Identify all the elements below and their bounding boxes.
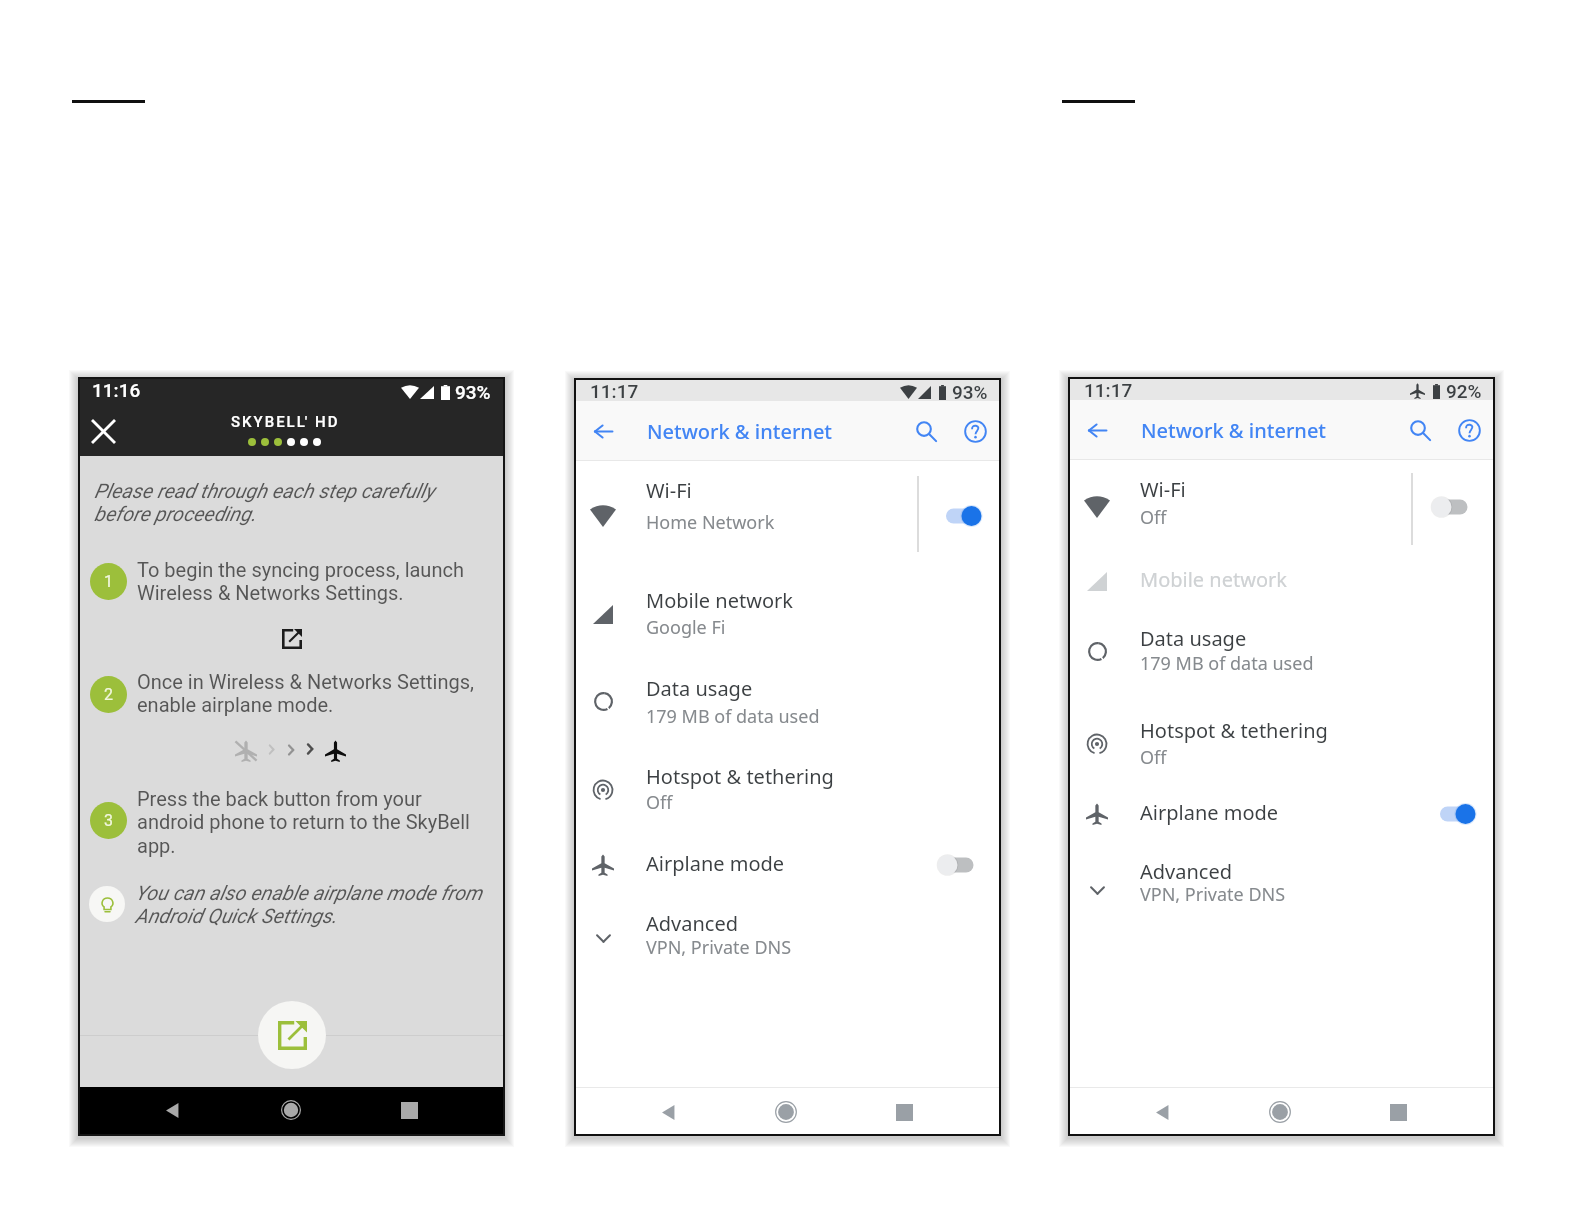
button[interactable]: Toggle bbox=[1418, 484, 1484, 530]
staticText: 1 bbox=[104, 572, 113, 591]
staticText: 179 MB of data used bbox=[1140, 651, 1314, 676]
staticText: Mobile network bbox=[1140, 566, 1287, 593]
staticText: Data usage bbox=[1140, 625, 1247, 652]
button[interactable]: Open in new bbox=[276, 623, 307, 654]
button[interactable]: Toggle bbox=[1418, 791, 1484, 837]
staticText: Please read through each step carefully … bbox=[94, 479, 454, 525]
staticText: Mobile network bbox=[646, 587, 793, 614]
button[interactable] bbox=[1068, 792, 1495, 832]
button[interactable]: 1 bbox=[90, 563, 127, 600]
button[interactable]: Search bbox=[904, 409, 948, 453]
staticText: Wi-Fi bbox=[646, 477, 692, 504]
button[interactable]: 3 bbox=[90, 802, 127, 839]
button[interactable] bbox=[1068, 618, 1495, 674]
button[interactable]: Home bbox=[272, 1091, 310, 1129]
button[interactable] bbox=[574, 580, 1001, 636]
button[interactable]: Press the back button from your android … bbox=[137, 787, 482, 857]
staticText: VPN, Private DNS bbox=[646, 935, 792, 960]
button[interactable]: Once in Wireless & Networks Settings, en… bbox=[137, 670, 482, 716]
staticText: Airplane mode bbox=[1140, 799, 1279, 826]
button[interactable]: Back bbox=[153, 1091, 191, 1129]
staticText: Hotspot & tethering bbox=[646, 763, 834, 790]
staticText: Home Network bbox=[646, 510, 775, 535]
staticText: Data usage bbox=[646, 675, 753, 702]
staticText: Advanced bbox=[1140, 858, 1232, 885]
staticText: Off bbox=[1140, 505, 1167, 530]
button[interactable]: Help bbox=[1447, 408, 1491, 452]
button[interactable] bbox=[1068, 469, 1495, 525]
staticText: Network & internet bbox=[647, 418, 833, 445]
button[interactable]: Launch Wireless and Networks settings bbox=[258, 1001, 326, 1069]
button[interactable]: Recent apps bbox=[1379, 1093, 1417, 1131]
staticText: Google Fi bbox=[646, 615, 726, 640]
button[interactable]: Close bbox=[81, 409, 125, 453]
button[interactable]: Navigate up bbox=[581, 409, 625, 453]
button[interactable]: Home bbox=[1261, 1093, 1299, 1131]
staticText: Off bbox=[646, 790, 673, 815]
staticText: Advanced bbox=[646, 910, 738, 937]
button[interactable] bbox=[574, 668, 1001, 724]
staticText: Hotspot & tethering bbox=[1140, 717, 1328, 744]
staticText: 179 MB of data used bbox=[646, 704, 820, 729]
staticText: 93% bbox=[455, 381, 491, 403]
staticText: 92% bbox=[1446, 380, 1482, 402]
button[interactable] bbox=[574, 470, 1001, 526]
staticText: VPN, Private DNS bbox=[1140, 882, 1286, 907]
staticText: Off bbox=[1140, 745, 1167, 770]
staticText: 11:17 bbox=[1084, 379, 1133, 401]
staticText: 93% bbox=[952, 381, 988, 403]
staticText: Wi-Fi bbox=[1140, 476, 1186, 503]
button[interactable]: Home bbox=[767, 1093, 805, 1131]
button[interactable]: Search bbox=[1398, 408, 1442, 452]
button[interactable]: Toggle bbox=[924, 493, 990, 539]
button[interactable]: To begin the syncing process, launch Wir… bbox=[137, 558, 482, 604]
staticText: 11:16 bbox=[92, 379, 141, 401]
button[interactable]: Recent apps bbox=[885, 1093, 923, 1131]
staticText: Airplane mode bbox=[646, 850, 785, 877]
staticText: 2 bbox=[104, 685, 113, 704]
button[interactable]: Recent apps bbox=[390, 1091, 428, 1129]
button[interactable] bbox=[1068, 559, 1495, 599]
button[interactable] bbox=[1068, 710, 1495, 766]
staticText: 11:17 bbox=[590, 380, 639, 402]
button[interactable] bbox=[1068, 851, 1495, 907]
button[interactable] bbox=[574, 903, 1001, 959]
button[interactable]: Help bbox=[953, 409, 997, 453]
staticText: SKYBELL' HD bbox=[231, 413, 340, 431]
staticText: 3 bbox=[104, 811, 113, 830]
button[interactable] bbox=[574, 756, 1001, 812]
staticText: Network & internet bbox=[1141, 417, 1327, 444]
button[interactable]: Back bbox=[1143, 1093, 1181, 1131]
button[interactable]: Back bbox=[649, 1093, 687, 1131]
staticText: You can also enable airplane mode from A… bbox=[135, 881, 495, 927]
button[interactable]: 2 bbox=[90, 676, 127, 713]
button[interactable]: Navigate up bbox=[1075, 408, 1119, 452]
button[interactable] bbox=[89, 886, 125, 922]
button[interactable]: Toggle bbox=[924, 842, 990, 888]
button[interactable] bbox=[574, 843, 1001, 883]
